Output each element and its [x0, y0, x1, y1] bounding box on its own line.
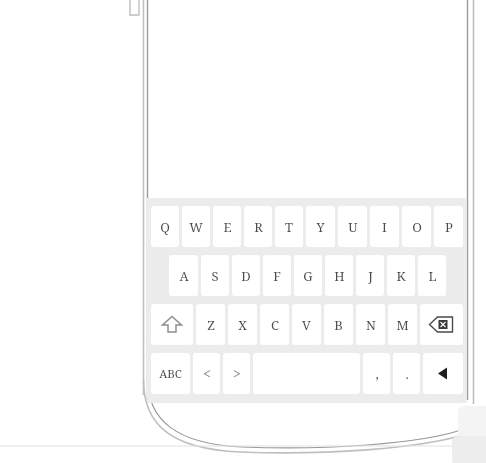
- button[interactable]: M: [388, 304, 417, 345]
- staticText: <: [203, 364, 211, 383]
- button[interactable]: <: [193, 353, 220, 394]
- button[interactable]: L: [418, 255, 446, 296]
- button[interactable]: F: [263, 255, 291, 296]
- staticText: C: [271, 316, 279, 334]
- staticText: M: [396, 316, 409, 334]
- button[interactable]: O: [402, 206, 431, 247]
- staticText: V: [302, 316, 311, 334]
- staticText: A: [179, 267, 189, 285]
- staticText: Y: [316, 218, 325, 236]
- button[interactable]: Q: [151, 206, 179, 247]
- button[interactable]: C: [260, 304, 289, 345]
- staticText: >: [233, 364, 241, 383]
- staticText: T: [285, 218, 293, 236]
- staticText: Q: [160, 218, 170, 236]
- button[interactable]: R: [244, 206, 272, 247]
- button[interactable]: >: [223, 353, 250, 394]
- button[interactable]: S: [201, 255, 229, 296]
- button[interactable]: I: [370, 206, 399, 247]
- staticText: G: [303, 267, 313, 285]
- staticText: U: [348, 218, 358, 236]
- staticText: J: [368, 267, 373, 285]
- staticText: K: [396, 267, 406, 285]
- staticText: .: [405, 365, 409, 383]
- staticText: I: [382, 218, 387, 236]
- button[interactable]: J: [356, 255, 384, 296]
- button[interactable]: U: [338, 206, 367, 247]
- button[interactable]: Z: [196, 304, 225, 345]
- staticText: O: [412, 218, 422, 236]
- button[interactable]: Y: [306, 206, 335, 247]
- button[interactable]: V: [292, 304, 321, 345]
- button[interactable]: N: [356, 304, 385, 345]
- staticText: B: [334, 316, 343, 334]
- button[interactable]: E: [213, 206, 241, 247]
- staticText: F: [273, 267, 281, 285]
- button[interactable]: .: [393, 353, 420, 394]
- button[interactable]: ,: [363, 353, 390, 394]
- staticText: N: [366, 316, 376, 334]
- staticText: H: [334, 267, 345, 285]
- button[interactable]: K: [387, 255, 415, 296]
- staticText: D: [241, 267, 251, 285]
- button[interactable]: G: [294, 255, 322, 296]
- button[interactable]: Backspace: [420, 304, 463, 345]
- staticText: S: [211, 267, 219, 285]
- staticText: X: [238, 316, 247, 334]
- button[interactable]: W: [182, 206, 210, 247]
- button[interactable]: T: [275, 206, 303, 247]
- button[interactable]: Enter: [423, 353, 463, 394]
- button[interactable]: A: [169, 255, 198, 296]
- button[interactable]: P: [434, 206, 463, 247]
- button[interactable]: ABC: [151, 353, 190, 394]
- button[interactable]: X: [228, 304, 257, 345]
- staticText: L: [428, 267, 437, 285]
- button[interactable]: Shift: [151, 304, 193, 345]
- staticText: W: [189, 218, 203, 236]
- staticText: ,: [375, 365, 379, 383]
- staticText: Z: [207, 316, 215, 334]
- staticText: E: [223, 218, 232, 236]
- staticText: R: [254, 218, 263, 236]
- button[interactable]: H: [325, 255, 353, 296]
- button[interactable]: B: [324, 304, 353, 345]
- staticText: P: [445, 218, 453, 236]
- button[interactable]: D: [232, 255, 260, 296]
- staticText: ABC: [159, 366, 182, 382]
